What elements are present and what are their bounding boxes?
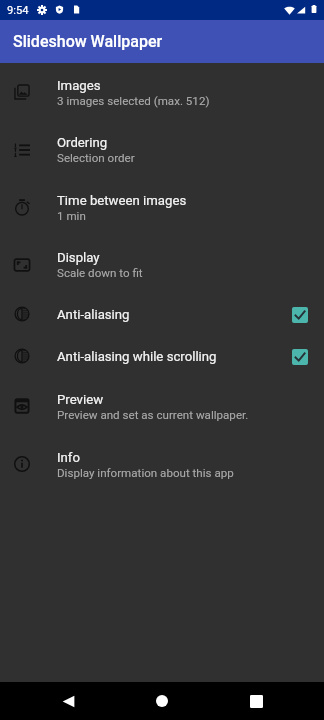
button[interactable]: Toggle Anti-aliasing while scrolling	[276, 335, 324, 377]
button[interactable]: Toggle Anti-aliasing	[276, 293, 324, 335]
staticText: Selection order	[57, 151, 135, 165]
staticText: Display	[57, 250, 100, 265]
staticText: Images	[57, 78, 101, 93]
staticText: Info	[57, 450, 80, 465]
button[interactable]: Anti-aliasing while scrolling	[0, 335, 324, 377]
button[interactable]: Preview	[0, 377, 324, 435]
button[interactable]: Back	[48, 689, 88, 713]
staticText: Time between images	[57, 193, 187, 208]
staticText: Preview and set as current wallpaper.	[57, 408, 249, 422]
button[interactable]: Home	[142, 689, 182, 713]
staticText: 3 images selected (max. 512)	[57, 94, 210, 108]
staticText: Scale down to fit	[57, 266, 143, 280]
button[interactable]: Display	[0, 236, 324, 293]
staticText: Ordering	[57, 135, 108, 150]
staticText: 1 min	[57, 209, 86, 223]
staticText: Slideshow Wallpaper	[13, 32, 163, 51]
staticText: 9:54	[7, 4, 29, 17]
button[interactable]: Anti-aliasing	[0, 293, 324, 335]
button[interactable]: Info	[0, 435, 324, 493]
button[interactable]: Images	[0, 63, 324, 121]
button[interactable]: Recents	[236, 689, 276, 713]
button[interactable]: Ordering	[0, 121, 324, 178]
staticText: Anti-aliasing	[57, 307, 130, 322]
staticText: Preview	[57, 392, 104, 407]
staticText: Anti-aliasing while scrolling	[57, 349, 217, 364]
button[interactable]: Time between images	[0, 178, 324, 236]
staticText: Display information about this app	[57, 466, 234, 480]
